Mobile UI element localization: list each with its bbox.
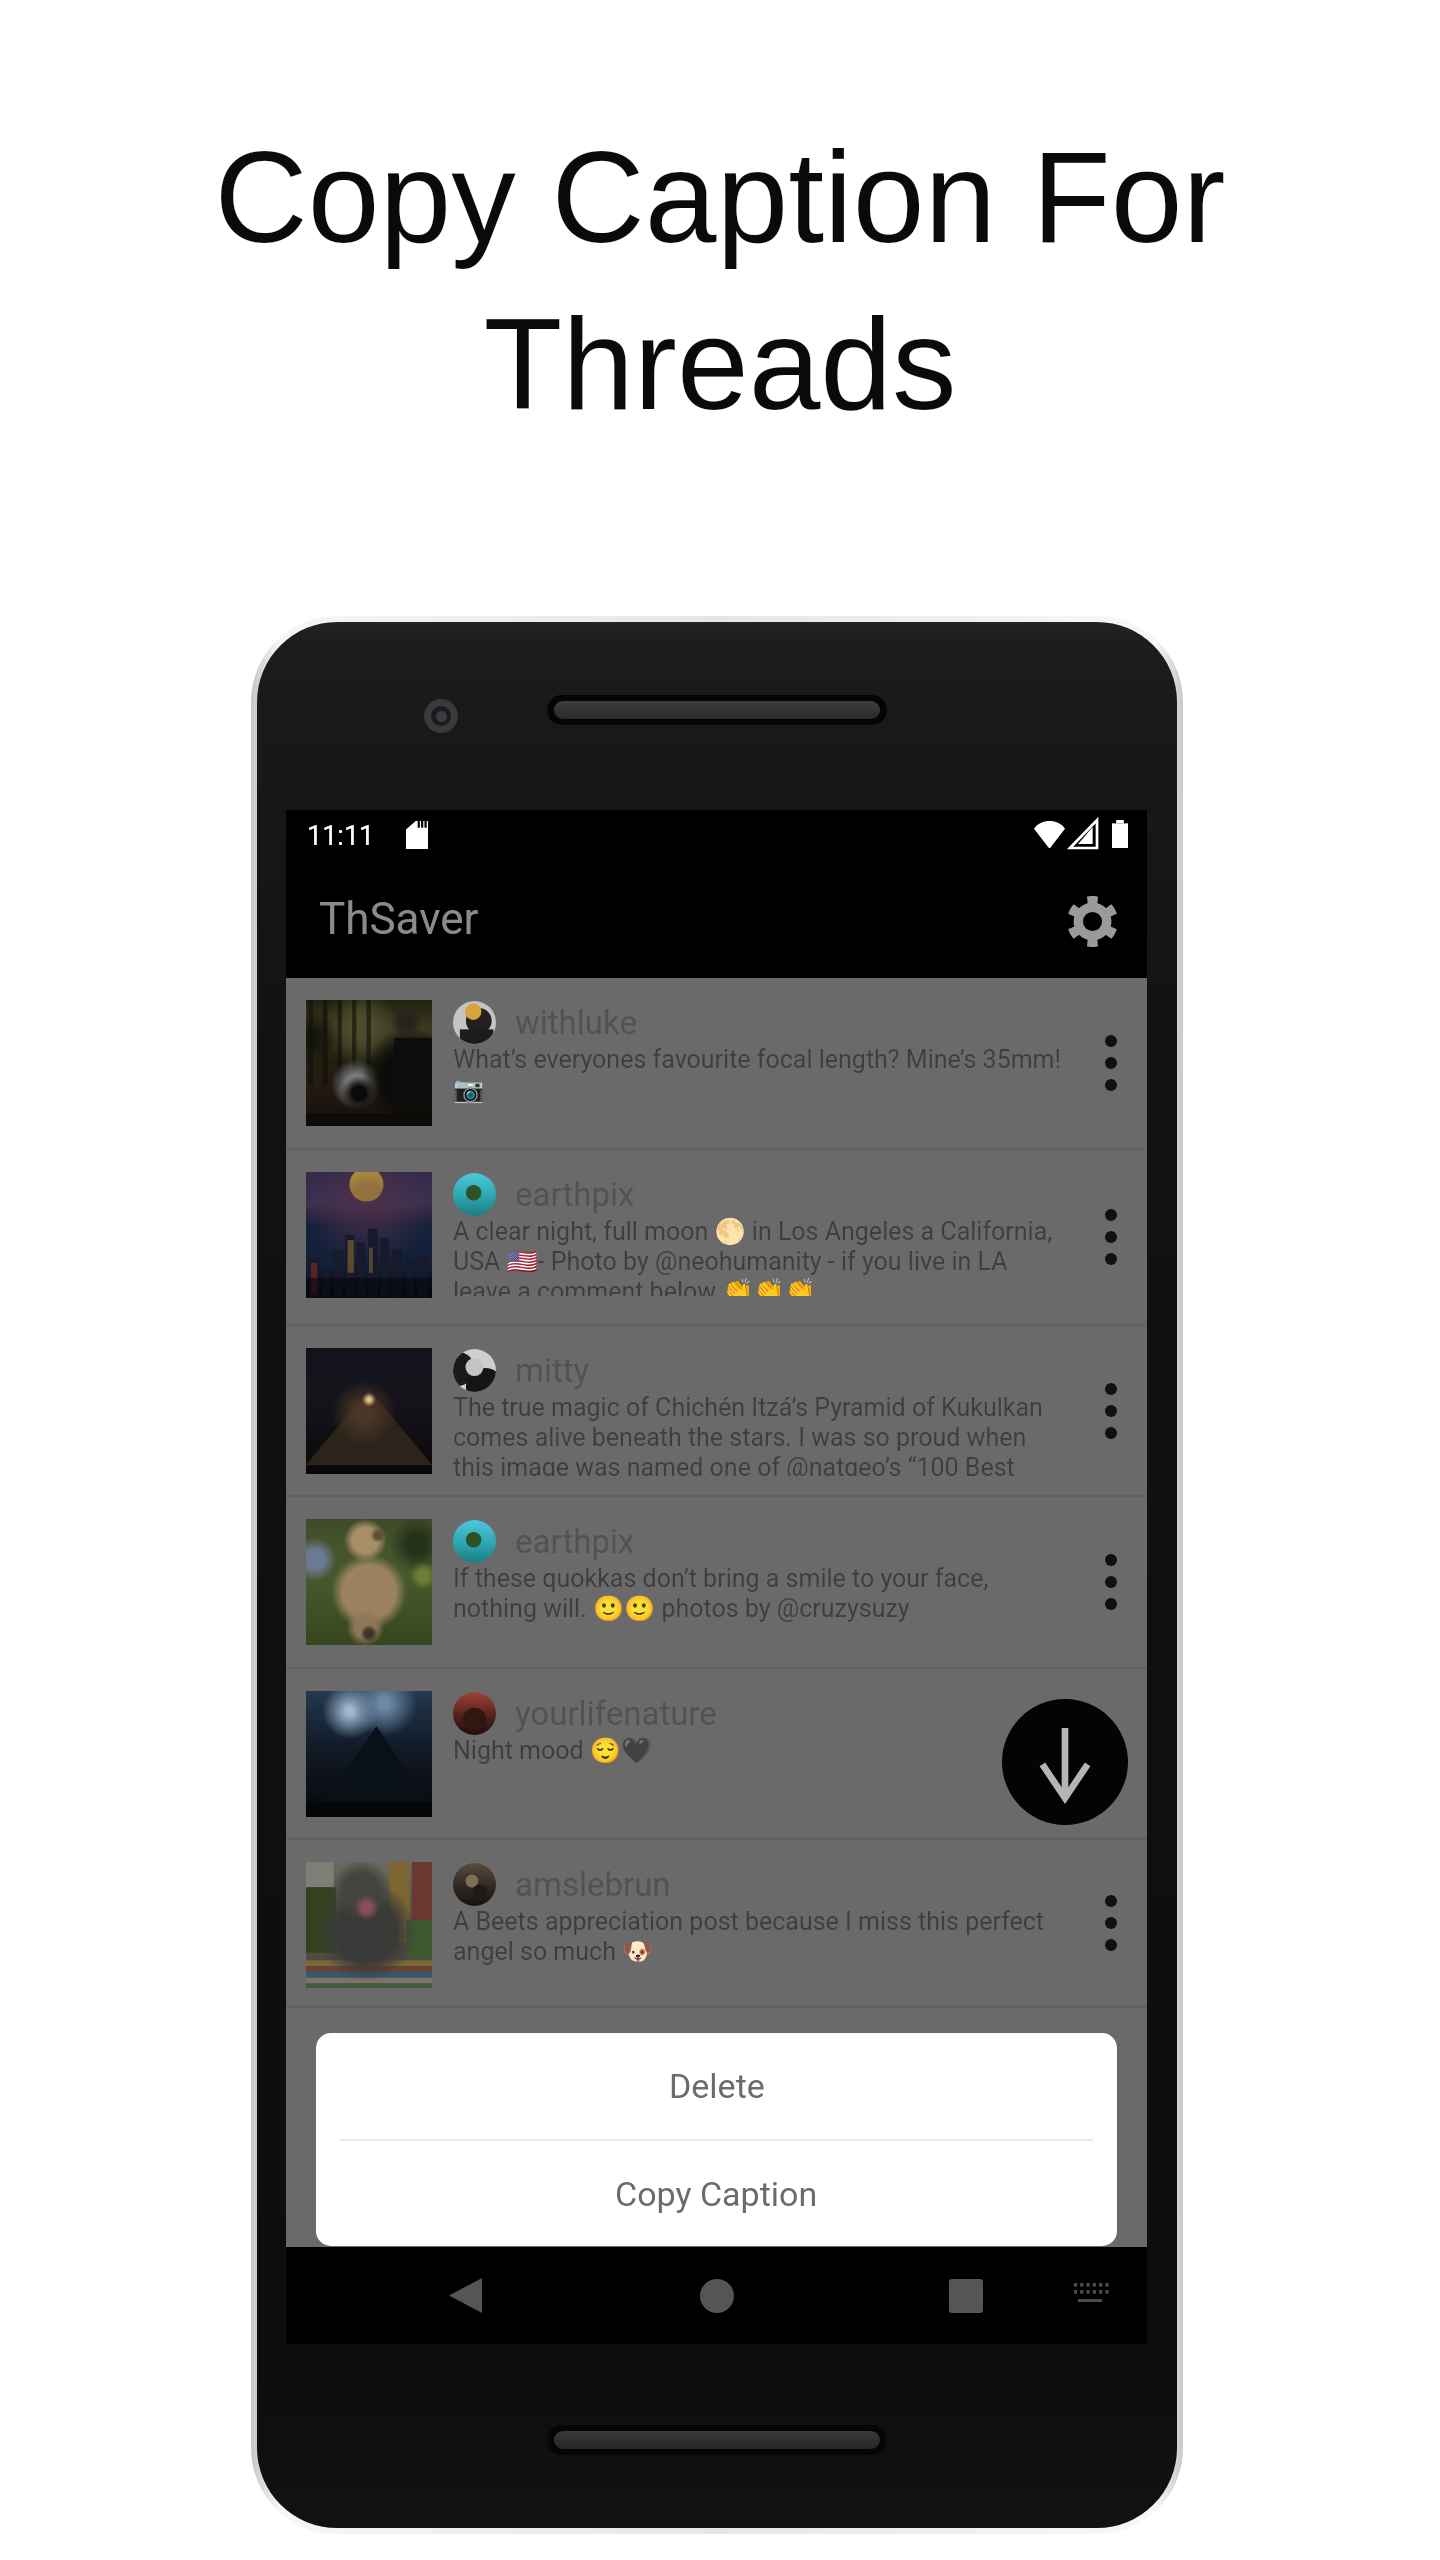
button[interactable]: earthpix (286, 1497, 1147, 1667)
button[interactable]: yourlifenature (286, 1669, 1147, 1838)
button[interactable]: Keyboard (1054, 2247, 1130, 2344)
staticText: earthpix (515, 1522, 635, 1561)
button[interactable]: Home (674, 2253, 760, 2339)
staticText: yourlifenature (515, 1694, 717, 1733)
button[interactable]: More options (1075, 1840, 1147, 2006)
button[interactable]: Back (422, 2247, 508, 2344)
staticText: amslebrun (515, 1865, 671, 1904)
button[interactable]: Download (1002, 1699, 1128, 1825)
button[interactable]: More options (1075, 1497, 1147, 1667)
button[interactable]: mitty (286, 1326, 1147, 1495)
button[interactable]: earthpix (286, 1150, 1147, 1324)
staticText: Night mood 😌🖤 (453, 1736, 1063, 1765)
button[interactable]: More options (1075, 978, 1147, 1148)
staticText: A clear night, full moon 🌕 in Los Angele… (453, 1217, 1063, 1296)
button[interactable]: Delete (316, 2033, 1117, 2139)
staticText: What’s everyones favourite focal length?… (453, 1045, 1063, 1104)
button[interactable]: withluke (286, 978, 1147, 1148)
staticText: Copy Caption For Threads (0, 125, 1440, 436)
staticText: mitty (515, 1351, 590, 1390)
staticText: A Beets appreciation post because I miss… (453, 1907, 1063, 1966)
staticText: Copy Caption (615, 2174, 818, 2214)
staticText: ThSaver (319, 893, 479, 945)
staticText: withluke (515, 1003, 637, 1042)
button[interactable]: Copy Caption (316, 2141, 1117, 2246)
button[interactable]: Recent apps (923, 2247, 1009, 2344)
button[interactable]: Settings (1048, 877, 1136, 965)
button[interactable]: More options (1075, 1150, 1147, 1324)
button[interactable]: amslebrun (286, 1840, 1147, 2006)
button[interactable]: More options (1075, 1326, 1147, 1495)
staticText: The true magic of Chichén Itzá’s Pyramid… (453, 1393, 1063, 1476)
staticText: 11:11 (307, 820, 375, 852)
staticText: If these quokkas don’t bring a smile to … (453, 1564, 1063, 1623)
staticText: earthpix (515, 1175, 635, 1214)
staticText: Delete (669, 2066, 765, 2106)
